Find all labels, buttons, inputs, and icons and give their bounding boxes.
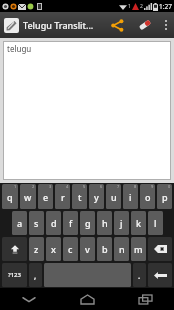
button[interactable]: q [2, 184, 18, 209]
button[interactable]: h [97, 211, 112, 235]
staticText: l [154, 217, 157, 229]
button[interactable]: a [12, 211, 27, 235]
button[interactable]: v [80, 237, 95, 261]
staticText: i [129, 191, 132, 203]
staticText: w [24, 191, 32, 203]
staticText: x [51, 243, 56, 255]
button[interactable]: t [72, 184, 87, 209]
button[interactable]: b [97, 237, 112, 261]
button[interactable]: More options [158, 12, 174, 38]
button[interactable]: g [80, 211, 95, 235]
staticText: 2 [140, 3, 143, 10]
staticText: u [111, 191, 117, 203]
staticText: r [61, 191, 65, 203]
button[interactable]: r [55, 184, 70, 209]
staticText: c [68, 243, 73, 255]
staticText: v [85, 243, 90, 255]
button[interactable]: . [133, 263, 146, 287]
staticText: g [85, 217, 91, 229]
button[interactable]: p [157, 184, 172, 209]
button[interactable]: n [114, 237, 129, 261]
staticText: z [34, 243, 39, 255]
staticText: h [102, 217, 108, 229]
button[interactable]: e [38, 184, 53, 209]
button[interactable]: Clear text [131, 12, 158, 38]
staticText: 3 [49, 184, 52, 189]
staticText: , [34, 270, 37, 281]
button[interactable]: Enter [148, 263, 172, 287]
staticText: o [145, 191, 151, 203]
button[interactable]: w [20, 184, 36, 209]
staticText: k [136, 217, 142, 229]
staticText: y [94, 191, 99, 203]
button[interactable]: x [46, 237, 61, 261]
staticText: 0 [168, 184, 171, 189]
button[interactable]: Recent apps [116, 288, 174, 310]
staticText: n [119, 243, 125, 255]
staticText: 5 [83, 184, 86, 189]
staticText: telugu [7, 43, 32, 54]
staticText: f [69, 217, 73, 229]
button[interactable]: u [106, 184, 121, 209]
button[interactable]: Home [58, 288, 116, 310]
button[interactable]: Telugu Translit... [0, 12, 104, 38]
button[interactable]: Share [104, 12, 131, 38]
button[interactable]: s [29, 211, 44, 235]
staticText: 8 [134, 184, 137, 189]
staticText: 4 [66, 184, 69, 189]
staticText: t [78, 191, 82, 203]
staticText: 7 [117, 184, 120, 189]
staticText: j [120, 217, 123, 229]
staticText: Telugu Translit... [23, 19, 94, 31]
staticText: e [43, 191, 49, 203]
staticText: . [138, 270, 141, 281]
button[interactable]: d [46, 211, 61, 235]
staticText: a [17, 217, 23, 229]
button[interactable]: Delete [148, 237, 172, 261]
button[interactable]: o [140, 184, 155, 209]
staticText: p [162, 191, 168, 203]
staticText: 1 [128, 3, 131, 10]
staticText: 9 [151, 184, 154, 189]
staticText: m [134, 243, 143, 255]
button[interactable]: z [29, 237, 44, 261]
staticText: b [102, 243, 108, 255]
button[interactable]: i [123, 184, 138, 209]
staticText: s [34, 217, 39, 229]
staticText: 2 [32, 184, 35, 189]
button[interactable]: j [114, 211, 129, 235]
staticText: 1:27 [159, 2, 172, 11]
staticText: d [51, 217, 57, 229]
staticText: 6 [100, 184, 103, 189]
button[interactable]: k [131, 211, 146, 235]
button[interactable]: , [29, 263, 42, 287]
button[interactable]: Shift [2, 237, 27, 261]
button[interactable]: l [148, 211, 163, 235]
button[interactable]: telugu [3, 41, 171, 180]
button[interactable]: m [131, 237, 146, 261]
button[interactable]: c [63, 237, 78, 261]
staticText: q [7, 191, 13, 203]
staticText: 1 [14, 184, 17, 189]
button[interactable]: ?123 [2, 263, 27, 287]
button[interactable]: Hide keyboard [0, 288, 58, 310]
button[interactable]: y [89, 184, 104, 209]
button[interactable]: f [63, 211, 78, 235]
staticText: ?123 [8, 271, 21, 279]
